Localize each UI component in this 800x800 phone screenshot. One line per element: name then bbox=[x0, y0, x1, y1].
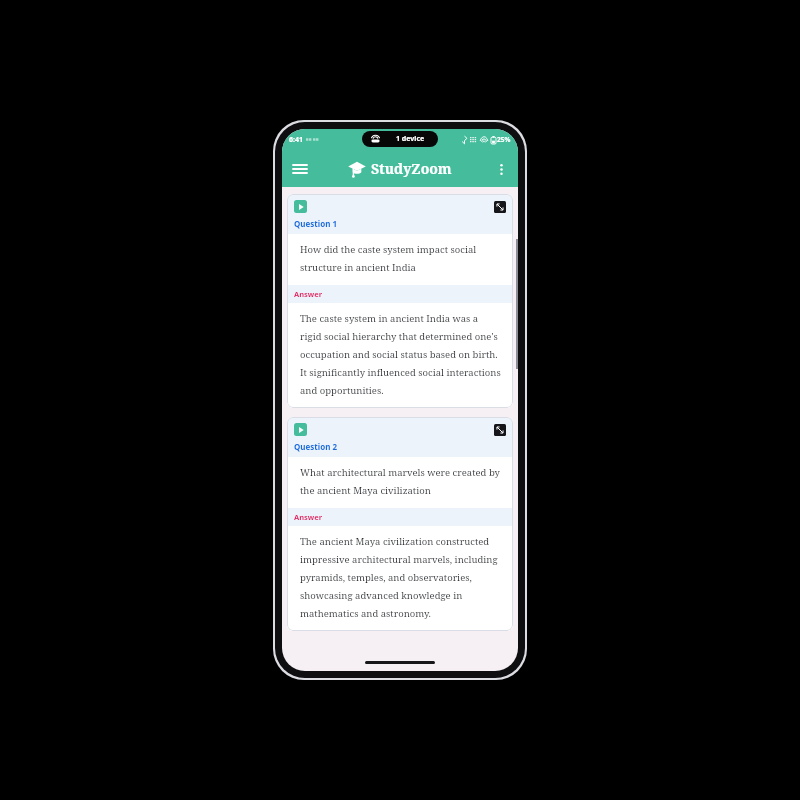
staticText: StudyZoom bbox=[371, 159, 452, 178]
staticText: The caste system in ancient India was a … bbox=[300, 312, 502, 397]
staticText: Answer bbox=[294, 512, 323, 522]
staticText: How did the caste system impact social s… bbox=[300, 243, 502, 274]
button[interactable]: Play audio bbox=[287, 194, 513, 408]
button[interactable]: Play audio bbox=[294, 200, 307, 213]
staticText: Question 2 bbox=[294, 441, 338, 452]
staticText: 1 device bbox=[396, 134, 425, 144]
staticText: Answer bbox=[294, 289, 323, 299]
button[interactable]: Play audio bbox=[287, 417, 513, 631]
button[interactable]: Expand fullscreen bbox=[494, 201, 506, 213]
staticText: 6:41 bbox=[289, 135, 303, 145]
button[interactable]: Expand fullscreen bbox=[494, 424, 506, 436]
button[interactable]: StudyZoom bbox=[348, 159, 452, 178]
staticText: Question 1 bbox=[294, 218, 338, 229]
button[interactable]: Open navigation menu bbox=[287, 156, 313, 182]
staticText: What architectural marvels were created … bbox=[300, 466, 502, 497]
staticText: 25% bbox=[497, 135, 511, 144]
button[interactable]: Play audio bbox=[294, 423, 307, 436]
button[interactable]: More options bbox=[489, 157, 513, 181]
staticText: The ancient Maya civilization constructe… bbox=[300, 535, 502, 620]
